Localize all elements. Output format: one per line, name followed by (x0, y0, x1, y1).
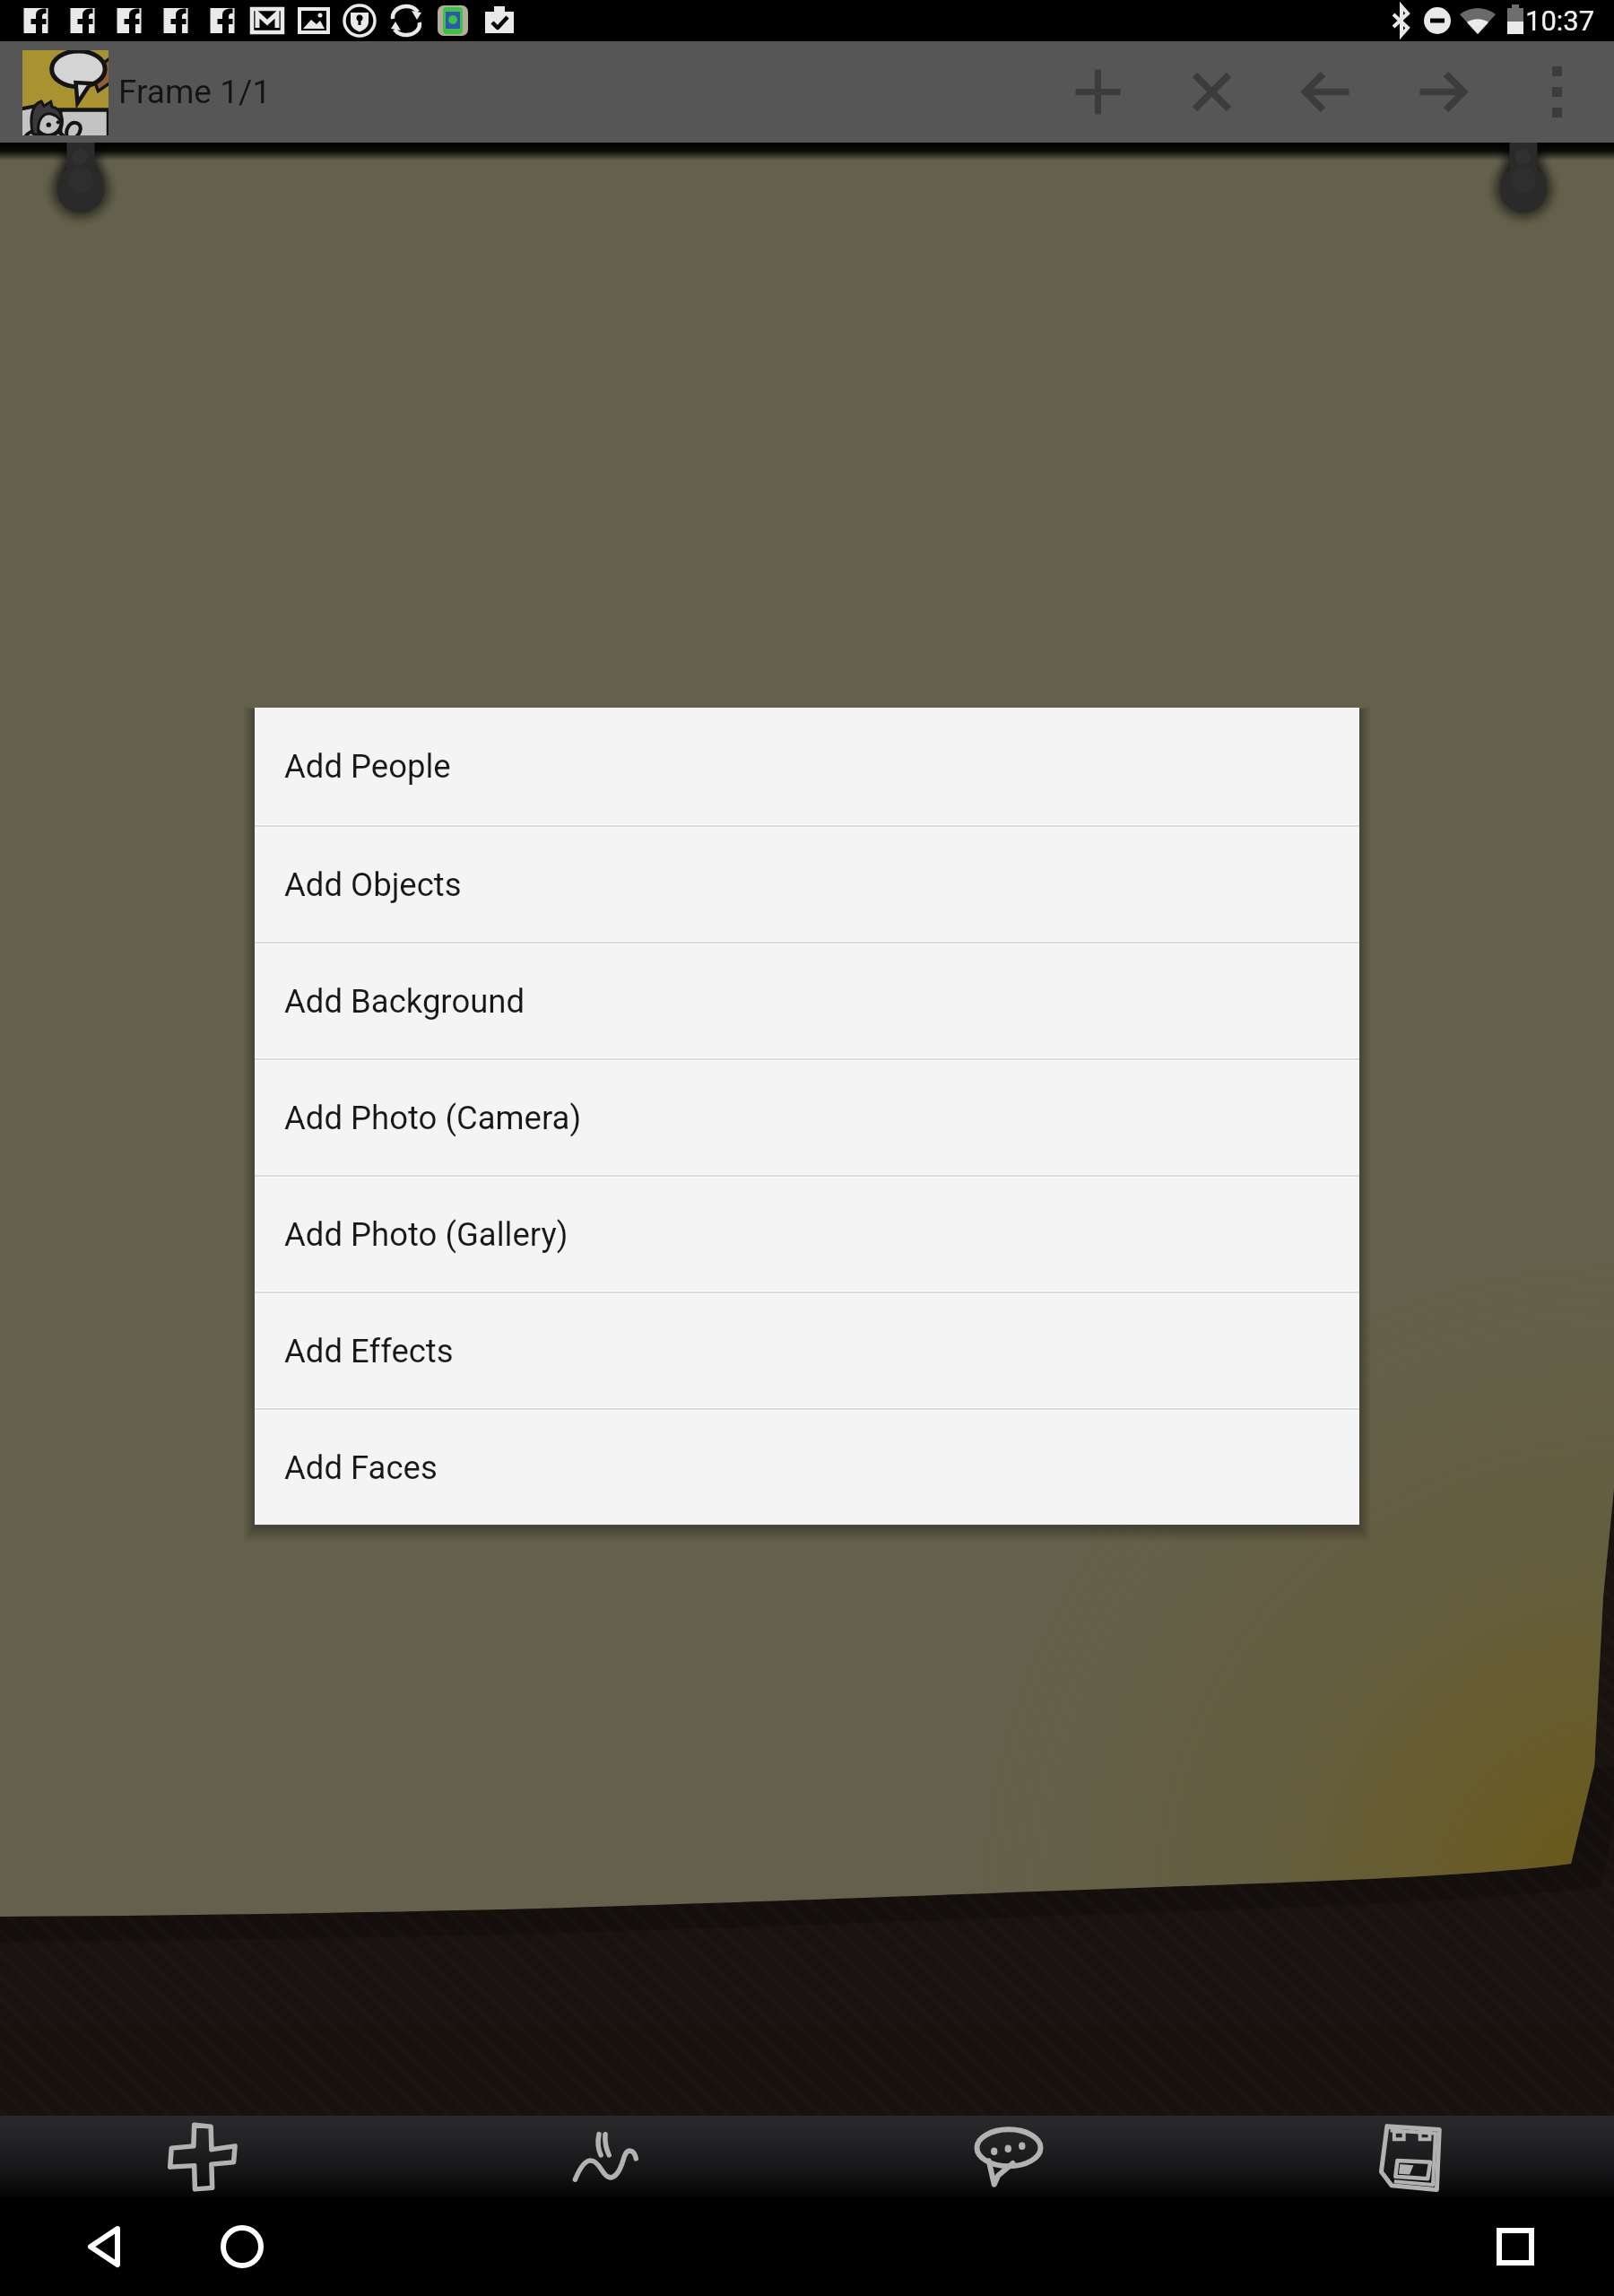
staticText: Add Photo (Camera) (284, 1099, 582, 1137)
button[interactable]: Add element (0, 2116, 403, 2196)
button[interactable]: Close (1161, 41, 1263, 143)
button[interactable]: Add (1047, 41, 1149, 143)
staticText: Add Photo (Gallery) (284, 1215, 568, 1254)
button[interactable]: Save (1210, 2116, 1614, 2196)
button[interactable]: Add People (255, 708, 1359, 824)
button[interactable]: Recent apps (1476, 2207, 1555, 2286)
button[interactable]: Back (65, 2207, 144, 2286)
button[interactable]: Add Effects (255, 1294, 1359, 1407)
staticText: Add Objects (284, 865, 462, 904)
staticText: Frame 1/1 (118, 73, 272, 111)
staticText: Add People (284, 747, 451, 786)
button[interactable]: Home (203, 2207, 282, 2286)
staticText: 10:37 (1525, 4, 1595, 37)
button[interactable]: Add Objects (255, 828, 1359, 941)
button[interactable]: Draw (403, 2116, 807, 2196)
staticText: Add Background (284, 982, 525, 1021)
button[interactable]: Undo (1277, 41, 1378, 143)
staticText: Add Effects (284, 1332, 454, 1370)
button[interactable]: Add Photo (Camera) (255, 1061, 1359, 1174)
button[interactable]: Add Photo (Gallery) (255, 1178, 1359, 1291)
button[interactable]: More options (1506, 41, 1608, 143)
button[interactable]: Redo (1391, 41, 1492, 143)
button[interactable]: Add Background (255, 944, 1359, 1057)
button[interactable]: Add Faces (255, 1411, 1359, 1524)
button[interactable]: App home (22, 50, 108, 135)
staticText: Add Faces (284, 1448, 438, 1487)
button[interactable]: Add speech balloon (807, 2116, 1210, 2196)
